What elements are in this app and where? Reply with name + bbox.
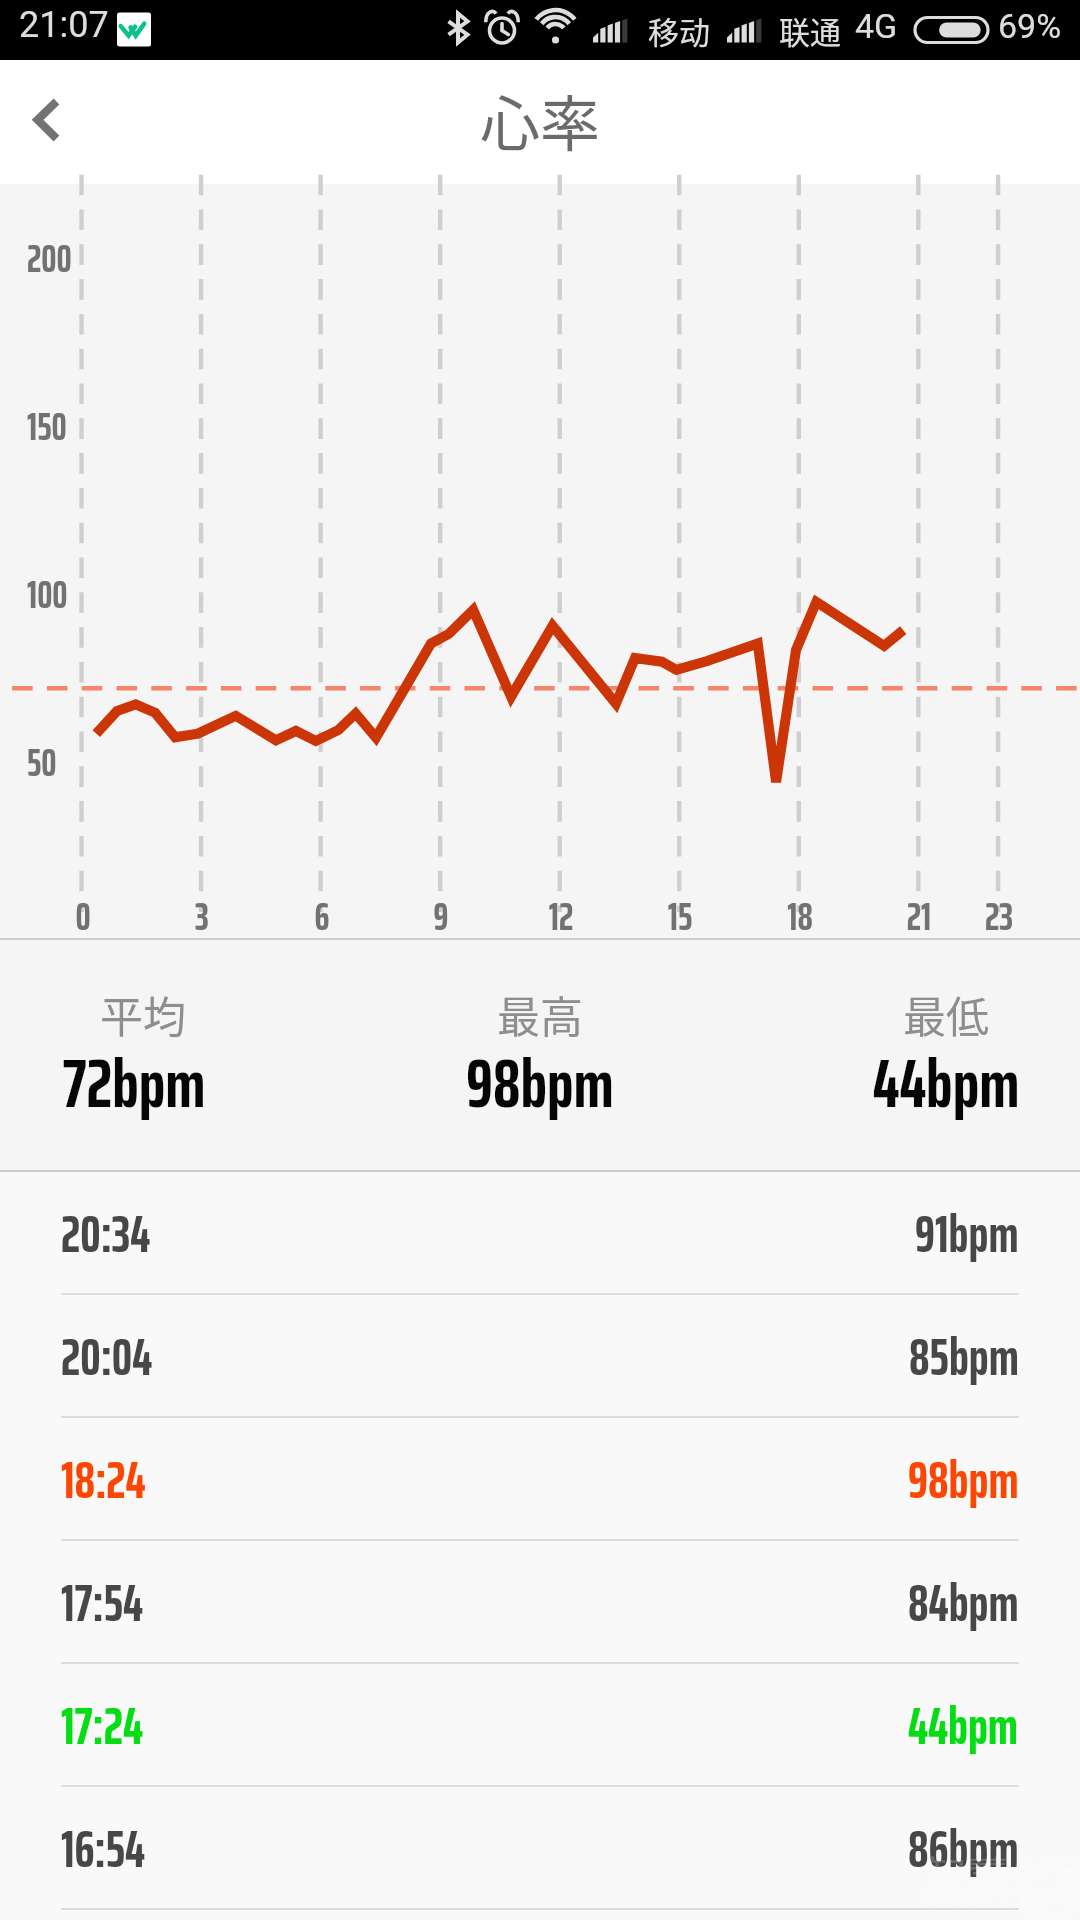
staticText: 21:07 [19, 4, 109, 46]
staticText: 20:34 [61, 1194, 151, 1274]
staticText: 移动 [648, 8, 710, 53]
staticText: 16:54 [61, 1809, 146, 1889]
staticText: 17:54 [61, 1563, 144, 1643]
staticText: 心率 [480, 76, 600, 163]
staticText: 50 [27, 733, 57, 793]
staticText: 9 [411, 887, 471, 947]
button[interactable]: 20:34 [0, 1172, 1080, 1295]
staticText: 智慧生活 [925, 1843, 1080, 1904]
staticText: 23 [969, 887, 1029, 947]
staticText: 4G [855, 6, 898, 46]
staticText: 44bpm [908, 1686, 1019, 1766]
button[interactable]: 18:24 [0, 1418, 1080, 1541]
staticText: 18 [770, 887, 830, 947]
staticText: 最低 [796, 983, 1080, 1045]
staticText: 91bpm [915, 1194, 1019, 1274]
staticText: 3 [172, 887, 232, 947]
button[interactable]: 20:04 [0, 1295, 1080, 1418]
staticText: 18:24 [61, 1440, 146, 1520]
staticText: 平均 [0, 983, 293, 1045]
staticText: 84bpm [908, 1563, 1019, 1643]
staticText: 69% [998, 6, 1062, 46]
staticText: 6 [292, 887, 352, 947]
button[interactable]: 16:54 [0, 1787, 1080, 1910]
button[interactable]: 17:54 [0, 1541, 1080, 1664]
staticText: 12 [531, 887, 591, 947]
staticText: 20:04 [61, 1317, 153, 1397]
staticText: 44bpm [796, 1030, 1080, 1137]
staticText: 85bpm [909, 1317, 1019, 1397]
button[interactable]: 17:24 [0, 1664, 1080, 1787]
staticText: 21 [889, 887, 949, 947]
staticText: SMART LIFE IN [925, 1886, 1073, 1912]
staticText: 100 [27, 565, 68, 625]
staticText: 0 [53, 887, 113, 947]
staticText: 联通 [779, 8, 841, 53]
staticText: 15 [650, 887, 710, 947]
staticText: 200 [27, 229, 72, 289]
staticText: 150 [27, 397, 67, 457]
button[interactable]: Back [0, 60, 95, 184]
staticText: 最高 [390, 983, 690, 1045]
staticText: 86bpm [908, 1809, 1019, 1889]
staticText: 98bpm [390, 1030, 690, 1137]
staticText: 72bpm [0, 1030, 284, 1137]
staticText: 17:24 [61, 1686, 144, 1766]
staticText: 98bpm [908, 1440, 1019, 1520]
